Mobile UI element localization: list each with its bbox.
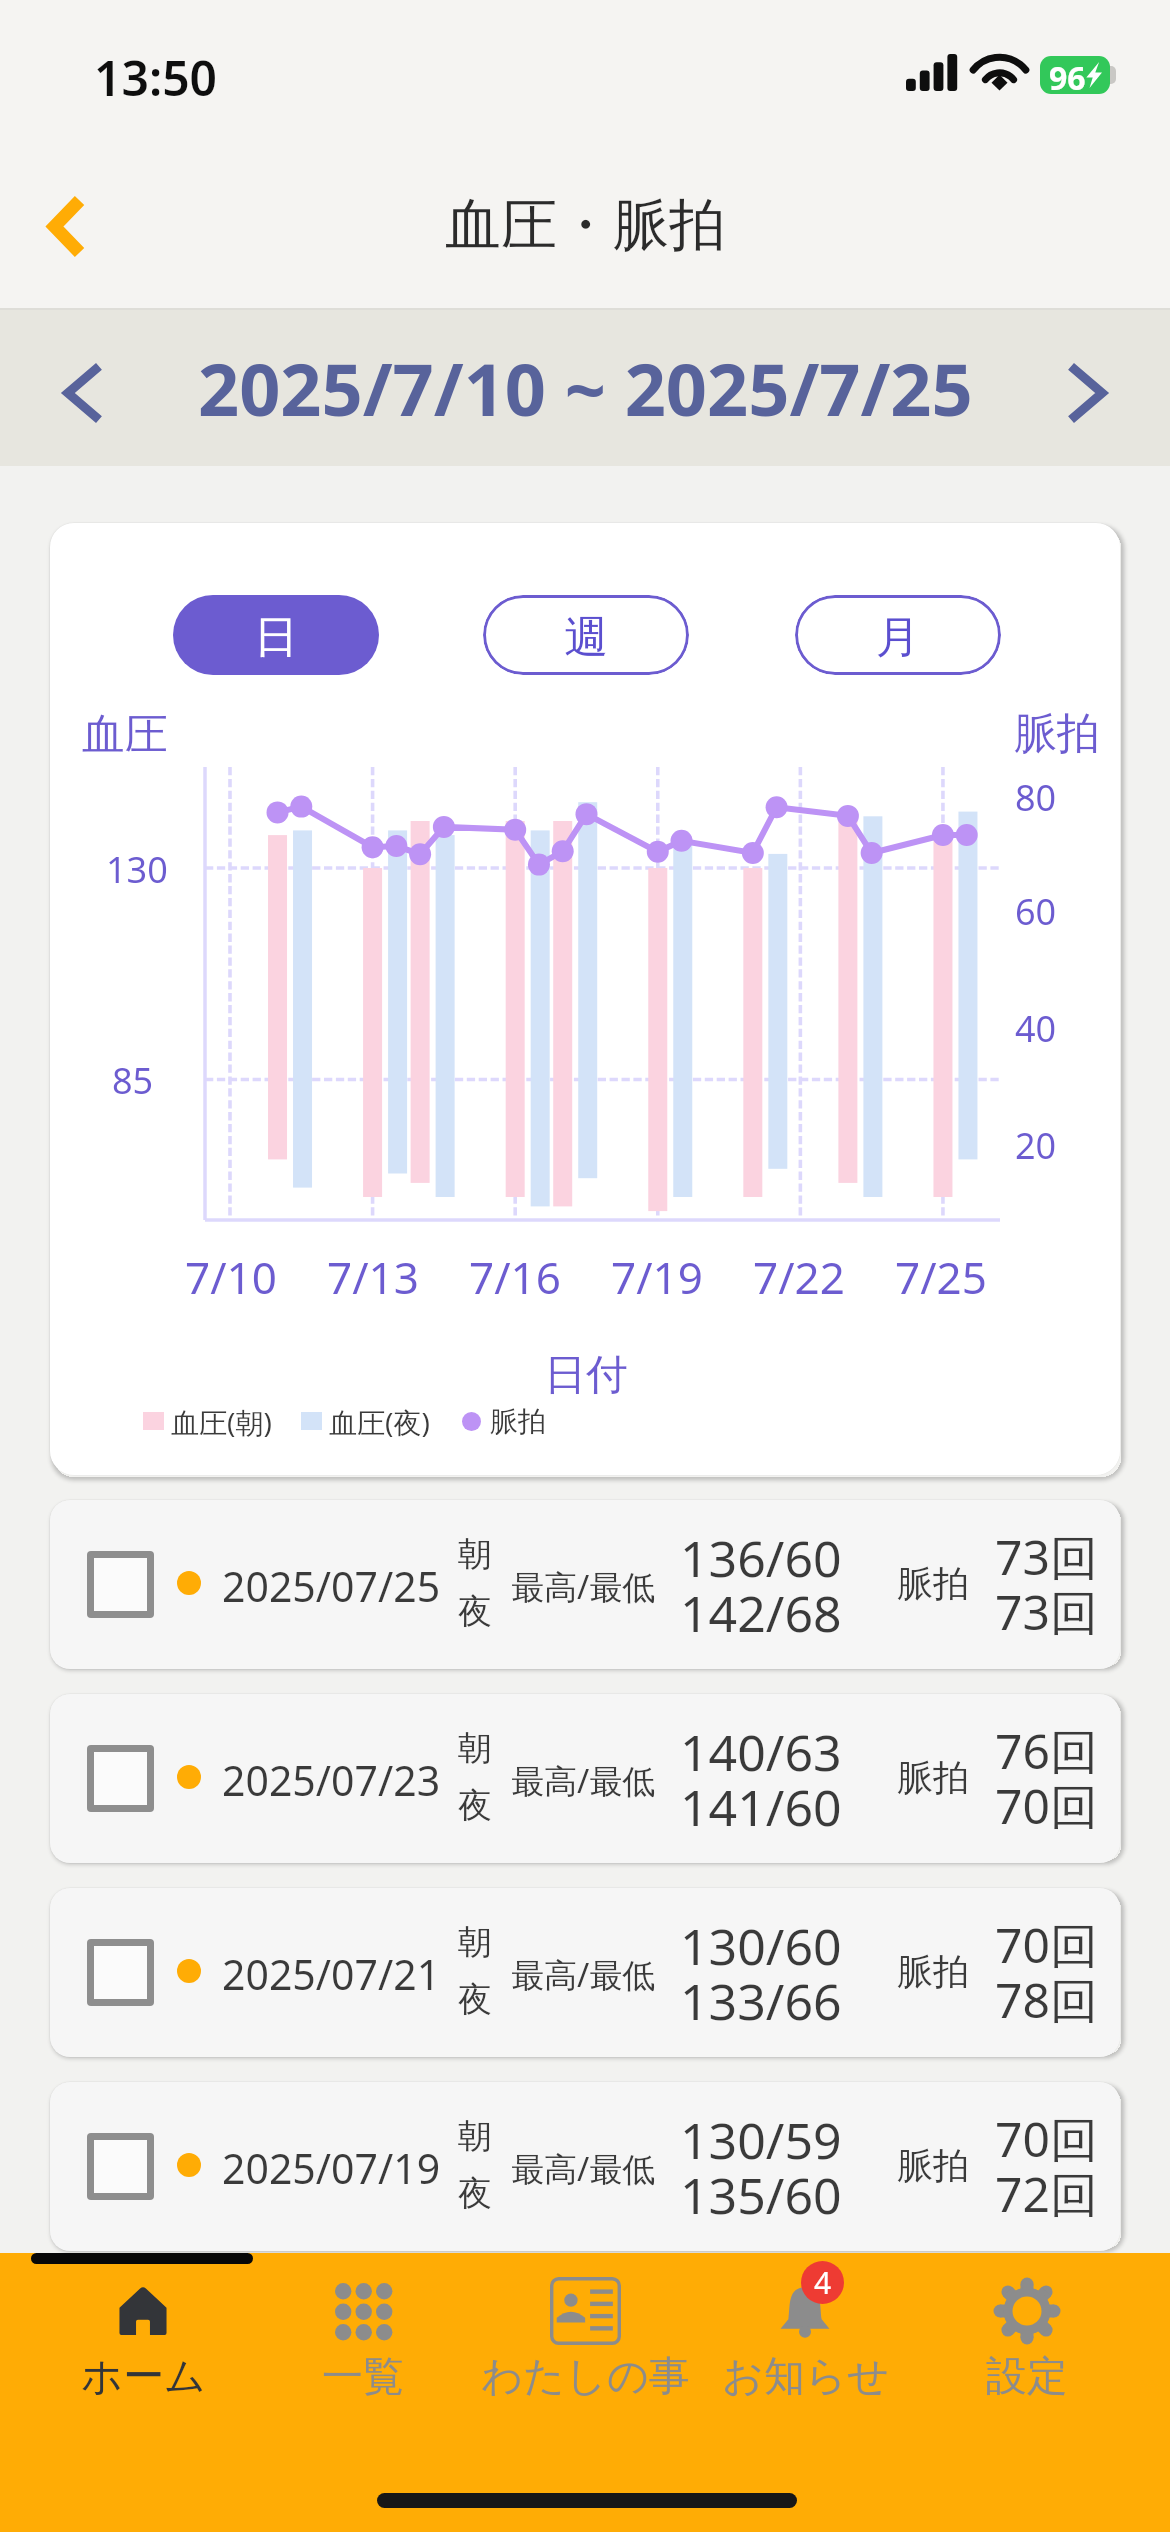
- staticText: 夜: [458, 1978, 492, 2021]
- staticText: 血圧(朝): [171, 1403, 272, 1439]
- staticText: 脈拍: [897, 1949, 969, 1994]
- staticText: 78回: [995, 1967, 1098, 2033]
- staticText: 日: [254, 610, 298, 665]
- button[interactable]: 日: [173, 595, 379, 675]
- staticText: 脈拍: [897, 2143, 969, 2188]
- staticText: 73回: [995, 1579, 1098, 1645]
- staticText: 最高/最低: [511, 1952, 656, 1997]
- staticText: 血圧(夜): [329, 1403, 430, 1439]
- staticText: 130/60: [680, 1912, 842, 1980]
- staticText: 70回: [995, 1912, 1098, 1978]
- staticText: 7/13: [327, 1247, 419, 1307]
- staticText: 夜: [458, 2172, 492, 2215]
- button[interactable]: 2025/07/19: [50, 2082, 1120, 2251]
- staticText: 脈拍: [490, 1404, 546, 1439]
- staticText: 2025/7/10 ~ 2025/7/25: [198, 339, 973, 437]
- staticText: 142/68: [680, 1579, 842, 1647]
- staticText: ホーム: [81, 2351, 206, 2403]
- staticText: わたしの事: [481, 2351, 690, 2403]
- staticText: 2025/07/25: [222, 1558, 441, 1614]
- staticText: 141/60: [680, 1773, 842, 1841]
- staticText: 月: [876, 610, 920, 665]
- button[interactable]: 4: [695, 2275, 915, 2403]
- staticText: 135/60: [680, 2161, 842, 2229]
- staticText: 73回: [995, 1524, 1098, 1590]
- button[interactable]: Next period: [1041, 347, 1133, 439]
- staticText: 最高/最低: [511, 2146, 656, 2191]
- button[interactable]: 設定: [917, 2275, 1137, 2403]
- button[interactable]: わたしの事: [475, 2275, 695, 2403]
- button[interactable]: 一覧: [253, 2275, 473, 2403]
- staticText: 96: [1049, 56, 1086, 94]
- button[interactable]: 2025/07/23: [50, 1694, 1120, 1863]
- staticText: 7/22: [753, 1247, 845, 1307]
- staticText: 朝: [458, 1921, 492, 1964]
- staticText: 設定: [986, 2351, 1068, 2403]
- staticText: 朝: [458, 1727, 492, 1770]
- staticText: 136/60: [680, 1524, 842, 1592]
- staticText: 脈拍: [1014, 707, 1100, 761]
- staticText: 60: [1015, 887, 1057, 936]
- staticText: 2025/07/21: [222, 1946, 441, 2002]
- staticText: 2025/07/23: [222, 1752, 441, 1808]
- button[interactable]: ホーム: [33, 2275, 253, 2403]
- staticText: 72回: [995, 2161, 1098, 2227]
- staticText: 13:50: [94, 45, 218, 110]
- staticText: 7/10: [185, 1247, 277, 1307]
- staticText: 一覧: [322, 2351, 404, 2403]
- staticText: 夜: [458, 1784, 492, 1827]
- staticText: 最高/最低: [511, 1564, 656, 1609]
- button[interactable]: Previous period: [37, 347, 129, 439]
- staticText: 80: [1015, 773, 1057, 822]
- staticText: 76回: [995, 1718, 1098, 1784]
- staticText: 70回: [995, 2106, 1098, 2172]
- staticText: 4: [814, 2262, 832, 2303]
- staticText: 血圧: [82, 708, 168, 762]
- staticText: 40: [1015, 1004, 1057, 1053]
- staticText: 朝: [458, 2115, 492, 2158]
- staticText: 脈拍: [897, 1755, 969, 1800]
- staticText: お知らせ: [722, 2351, 889, 2403]
- staticText: 脈拍: [897, 1561, 969, 1606]
- staticText: 夜: [458, 1590, 492, 1633]
- button[interactable]: Back: [4, 156, 130, 296]
- staticText: 7/16: [469, 1247, 561, 1307]
- staticText: 血圧・脈拍: [445, 190, 725, 261]
- button[interactable]: 2025/07/25: [50, 1500, 1120, 1669]
- staticText: 140/63: [680, 1718, 842, 1786]
- staticText: 2025/07/19: [222, 2140, 441, 2196]
- staticText: 週: [564, 610, 608, 665]
- button[interactable]: 2025/07/21: [50, 1888, 1120, 2057]
- staticText: 日付: [544, 1349, 628, 1402]
- staticText: 130: [106, 845, 168, 894]
- staticText: 133/66: [680, 1967, 842, 2035]
- staticText: 70回: [995, 1773, 1098, 1839]
- staticText: 7/25: [895, 1247, 987, 1307]
- staticText: 20: [1015, 1121, 1057, 1170]
- staticText: 130/59: [680, 2106, 842, 2174]
- staticText: 7/19: [611, 1247, 703, 1307]
- button[interactable]: 週: [483, 595, 689, 675]
- button[interactable]: 月: [795, 595, 1001, 675]
- staticText: 85: [112, 1056, 154, 1105]
- staticText: 最高/最低: [511, 1758, 656, 1803]
- staticText: 朝: [458, 1533, 492, 1576]
